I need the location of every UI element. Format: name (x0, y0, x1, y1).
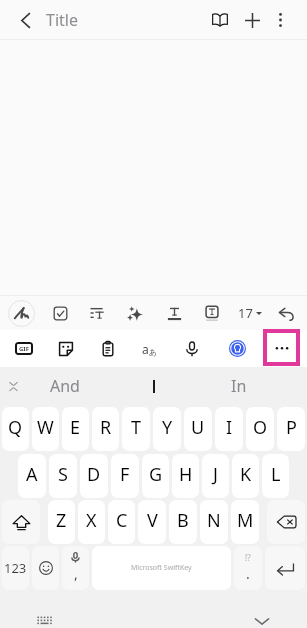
button[interactable]: Reading view (203, 0, 237, 40)
button[interactable]: G (142, 454, 169, 498)
staticText: E (70, 415, 81, 440)
staticText: Q (8, 415, 23, 440)
button[interactable]: T (122, 407, 150, 451)
button[interactable]: Stickers (47, 330, 85, 367)
staticText: S (58, 462, 68, 487)
staticText: K (240, 462, 252, 487)
button[interactable]: Expand suggestions (0, 367, 26, 405)
button[interactable]: Bixby (218, 330, 256, 367)
button[interactable]: Undo (267, 296, 305, 330)
button[interactable]: P (277, 407, 305, 451)
staticText: V (147, 508, 158, 533)
staticText: . (246, 564, 250, 583)
button[interactable]: X (78, 500, 105, 544)
button[interactable]: And (22, 367, 108, 405)
button[interactable]: Add (235, 0, 269, 40)
button[interactable]: Enter (265, 546, 305, 590)
staticText: J (213, 462, 218, 487)
staticText: P (286, 415, 297, 440)
button[interactable]: Hide keyboard (244, 610, 280, 628)
button[interactable]: H (172, 454, 199, 498)
button[interactable]: K (232, 454, 259, 498)
staticText: Title (46, 9, 78, 31)
button[interactable]: Paragraph style (78, 296, 116, 330)
button[interactable]: Checklist (41, 296, 79, 330)
button[interactable]: Q (2, 407, 29, 451)
button[interactable]: S (49, 454, 77, 498)
staticText: In (231, 375, 247, 397)
button[interactable]: Translate (129, 330, 171, 367)
button[interactable]: 17 (232, 296, 268, 330)
staticText: T (131, 415, 142, 440)
staticText: あ (149, 347, 158, 357)
button[interactable]: L (262, 454, 289, 498)
staticText: O (253, 415, 268, 440)
button[interactable]: Text box (193, 296, 231, 330)
button[interactable]: Text style (155, 296, 193, 330)
staticText: N (207, 508, 221, 533)
button[interactable]: J (202, 454, 229, 498)
staticText: Z (56, 508, 67, 533)
staticText: H (179, 462, 193, 487)
staticText: B (177, 508, 189, 533)
button[interactable]: M (231, 500, 259, 544)
staticText: Microsoft SwiftKey (131, 563, 192, 573)
button[interactable]: Emoji (32, 546, 59, 590)
staticText: F (120, 462, 130, 487)
button[interactable]: A (18, 454, 46, 498)
button[interactable]: Voice input (173, 330, 211, 367)
staticText: GIF (19, 345, 29, 353)
staticText: Y (162, 415, 173, 440)
button[interactable]: Backspace (267, 500, 305, 544)
button[interactable]: Clipboard (89, 330, 127, 367)
button[interactable]: Voice typing (62, 546, 89, 590)
button[interactable]: Z (48, 500, 75, 544)
button[interactable]: More keyboard options (263, 329, 300, 366)
button[interactable]: R (92, 407, 119, 451)
staticText: , (74, 564, 78, 583)
staticText: W (37, 415, 54, 440)
button[interactable]: Space (92, 546, 231, 590)
button[interactable]: V (138, 500, 166, 544)
button[interactable]: W (32, 407, 59, 451)
button[interactable]: C (108, 500, 135, 544)
staticText: D (87, 462, 101, 487)
staticText: U (191, 415, 205, 440)
button[interactable]: U (184, 407, 212, 451)
button[interactable]: Smart suggestions (115, 296, 153, 330)
button[interactable]: F (111, 454, 139, 498)
staticText: 17 (238, 304, 253, 322)
button[interactable]: Period (234, 546, 262, 590)
button[interactable]: Handwriting (2, 296, 40, 330)
staticText: R (100, 415, 112, 440)
button[interactable]: D (80, 454, 108, 498)
button[interactable]: Keyboard layout (29, 609, 61, 628)
staticText: A (26, 462, 38, 487)
staticText: a (142, 341, 149, 357)
staticText: C (116, 508, 128, 533)
staticText: X (86, 508, 97, 533)
staticText: M (237, 508, 254, 533)
staticText: 123 (4, 559, 27, 577)
staticText: G (149, 462, 163, 487)
button[interactable]: In (155, 367, 307, 405)
button[interactable]: E (62, 407, 89, 451)
button[interactable]: I (215, 407, 243, 451)
button[interactable]: Shift (2, 500, 40, 544)
button[interactable]: N (200, 500, 228, 544)
button[interactable]: Y (153, 407, 181, 451)
staticText: And (50, 375, 80, 397)
button[interactable]: Numbers (2, 546, 29, 590)
button[interactable]: O (246, 407, 274, 451)
button[interactable]: More options (263, 0, 297, 40)
staticText: L (271, 462, 281, 487)
button[interactable]: Back (7, 0, 43, 40)
button[interactable]: B (169, 500, 197, 544)
button[interactable]: GIF (5, 330, 43, 367)
staticText: I (226, 415, 233, 440)
staticText: !? (245, 552, 251, 563)
